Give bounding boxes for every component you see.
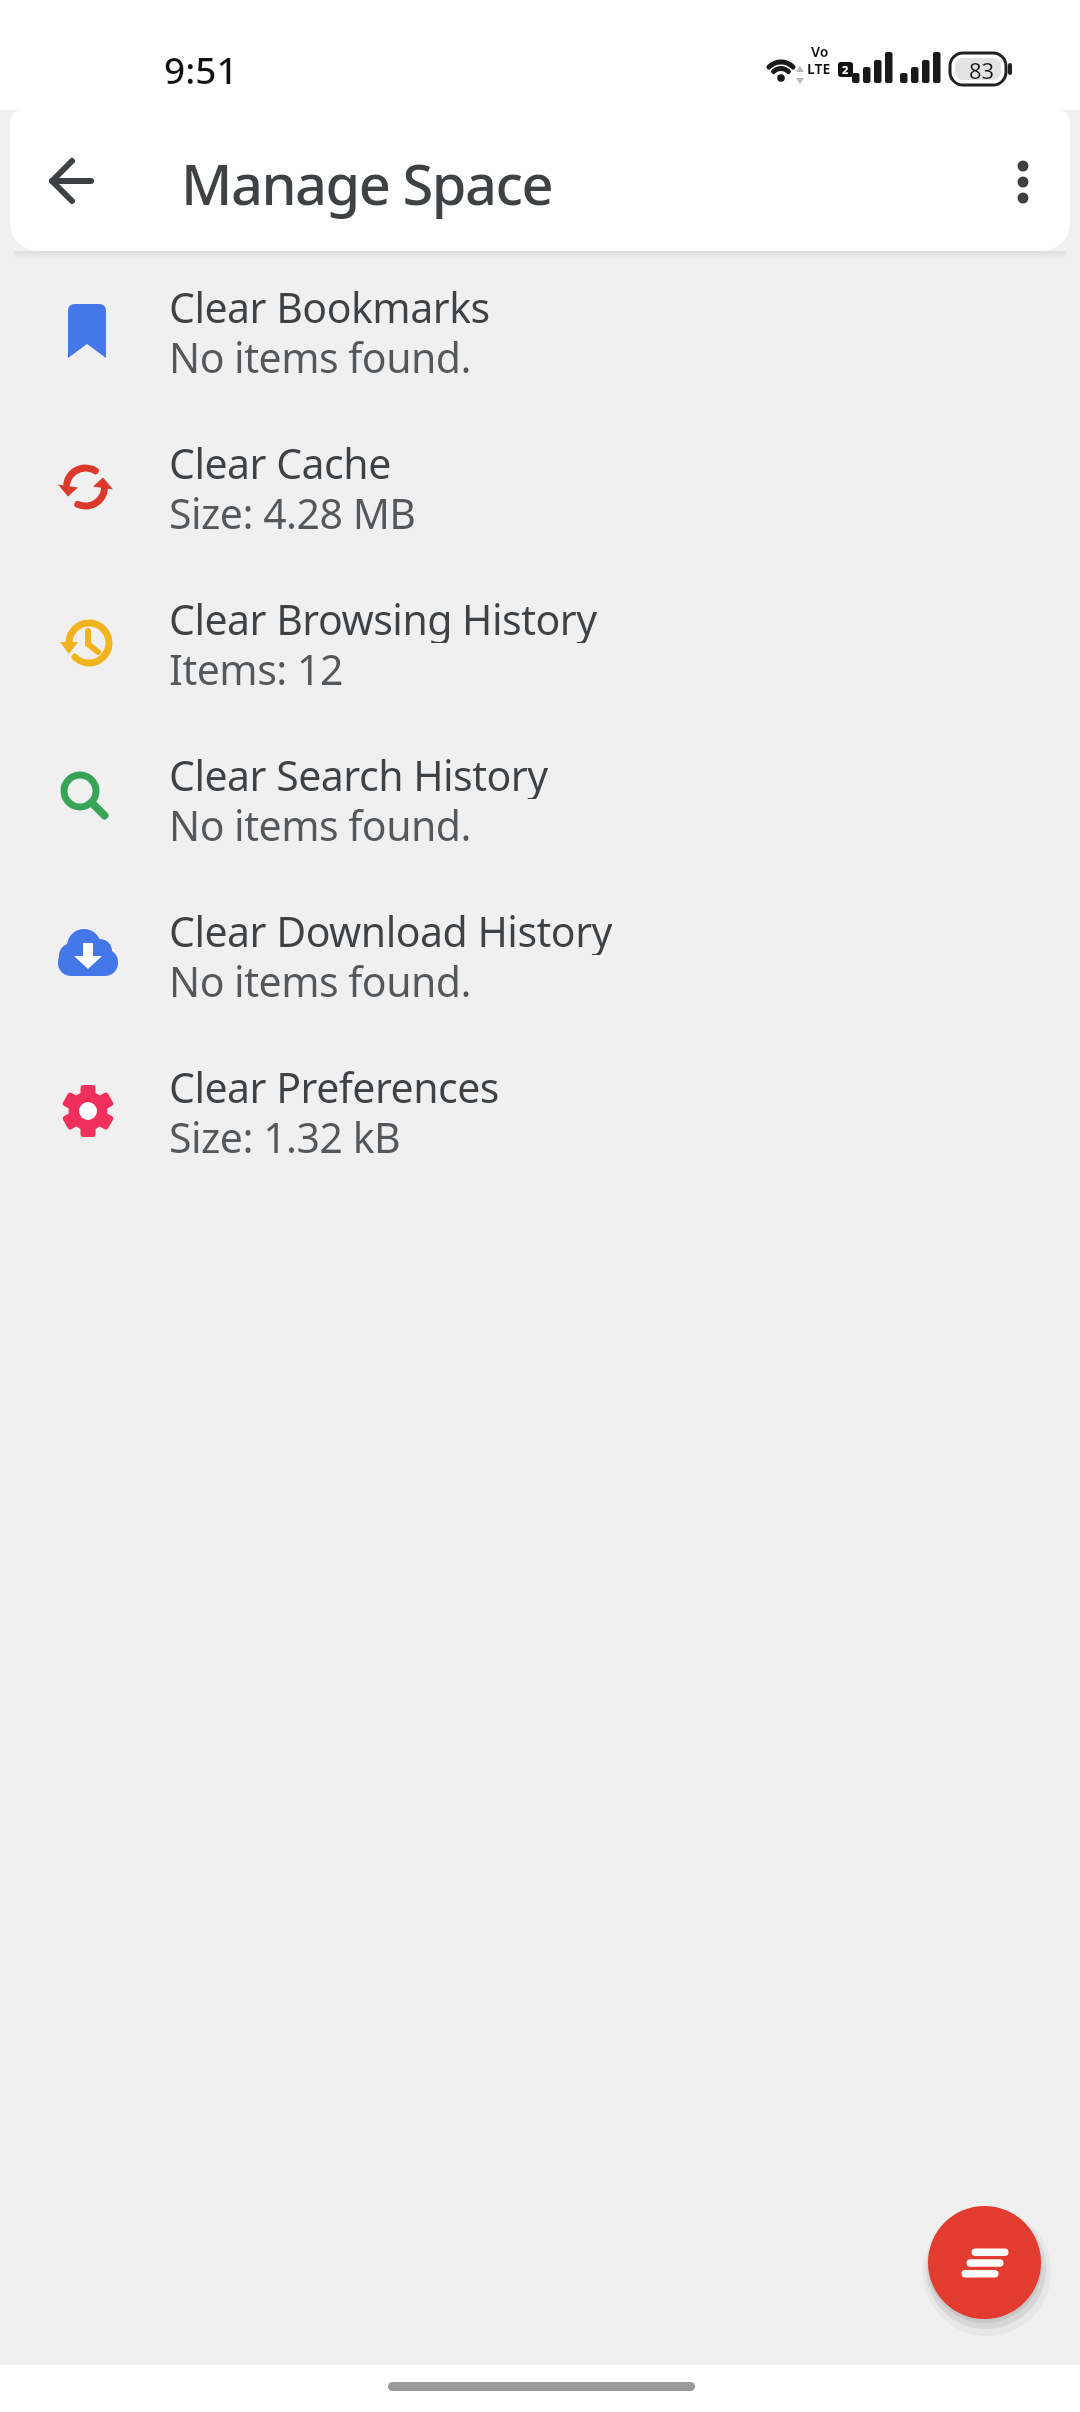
button[interactable]: Clear Search History — [0, 721, 1080, 877]
staticText: Clear Search History — [169, 747, 548, 799]
staticText: Size: 1.32 kB — [169, 1109, 401, 1161]
staticText: Clear Cache — [169, 435, 391, 487]
staticText: Manage Space — [181, 145, 553, 221]
button[interactable] — [32, 141, 112, 221]
staticText: Clear Download History — [169, 903, 612, 955]
staticText: 9:51 — [164, 44, 238, 94]
staticText: No items found. — [169, 797, 472, 849]
staticText: Vo — [811, 42, 829, 61]
staticText: Clear Bookmarks — [169, 279, 490, 331]
button[interactable] — [983, 142, 1063, 222]
staticText: Clear Preferences — [169, 1059, 499, 1111]
staticText: No items found. — [169, 953, 472, 1005]
button[interactable]: Clear Preferences — [0, 1033, 1080, 1189]
staticText: Items: 12 — [169, 641, 343, 693]
button[interactable]: Clear Bookmarks — [0, 253, 1080, 409]
button[interactable] — [928, 2206, 1041, 2319]
button[interactable]: Clear Download History — [0, 877, 1080, 1033]
button[interactable]: Clear Cache — [0, 409, 1080, 565]
button[interactable]: Clear Browsing History — [0, 565, 1080, 721]
staticText: No items found. — [169, 329, 472, 381]
staticText: 2 — [842, 62, 849, 77]
staticText: LTE — [807, 59, 831, 78]
staticText: Size: 4.28 MB — [169, 485, 416, 537]
staticText: Clear Browsing History — [169, 591, 597, 643]
staticText: 83 — [969, 55, 995, 85]
